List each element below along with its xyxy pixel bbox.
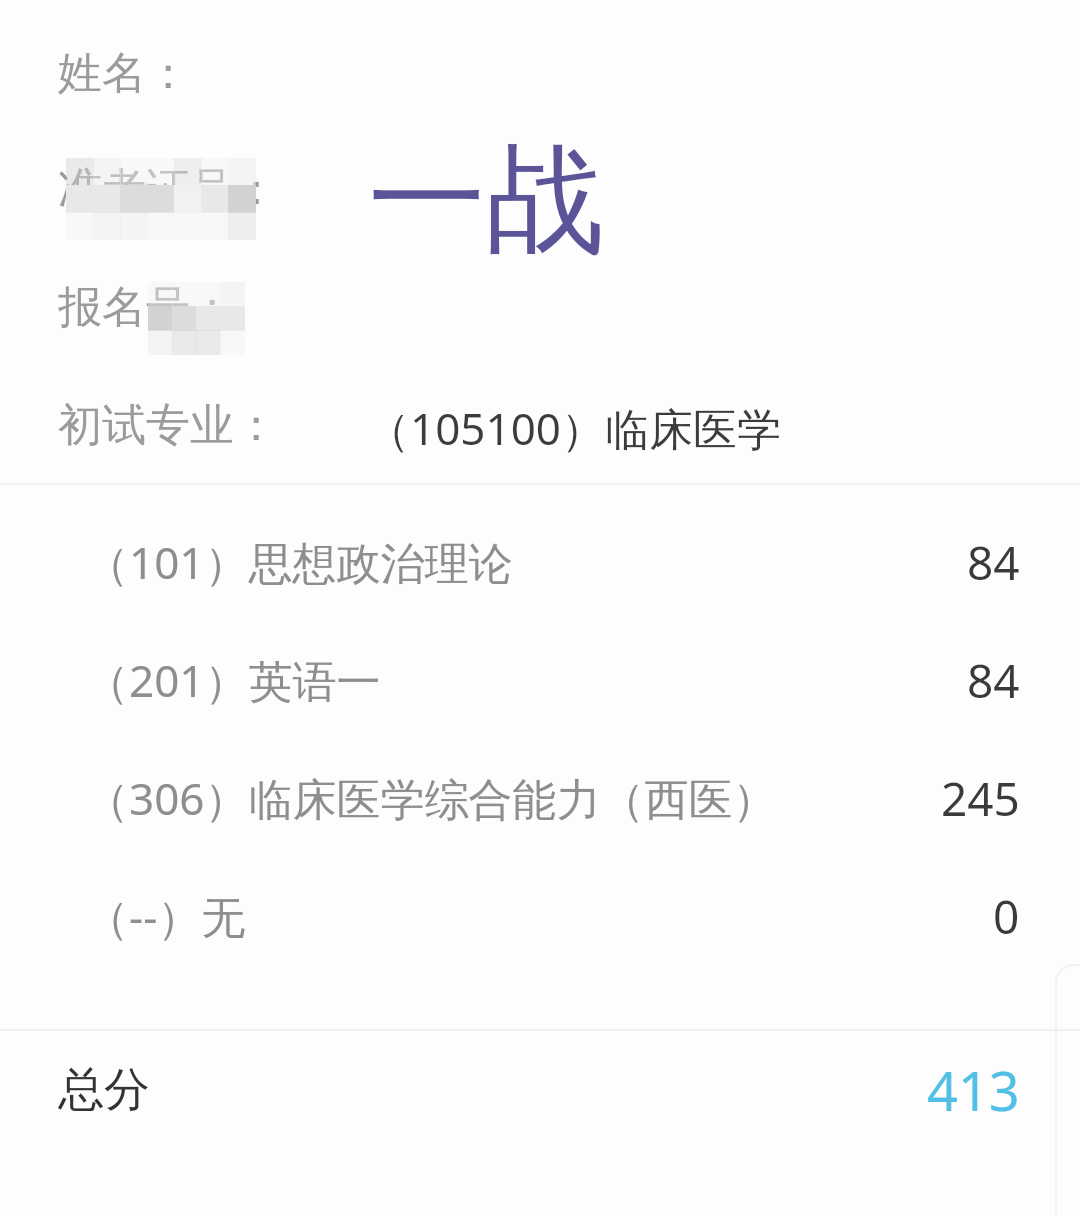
staticText: 报名号： xyxy=(58,280,234,335)
staticText: 初试专业： xyxy=(58,398,278,453)
staticText: 姓名： xyxy=(58,46,190,101)
staticText: 245 xyxy=(941,767,1020,830)
staticText: 413 xyxy=(927,1053,1020,1127)
button[interactable]: （306）临床医学综合能力（西医） xyxy=(0,739,1080,857)
staticText: （306）临床医学综合能力（西医） xyxy=(85,768,777,828)
staticText: 总分 xyxy=(58,1061,150,1119)
staticText: （105100）临床医学 xyxy=(366,398,782,458)
staticText: 0 xyxy=(993,885,1020,948)
button[interactable]: （--）无 xyxy=(0,857,1080,975)
staticText: 84 xyxy=(967,531,1020,594)
staticText: （201）英语一 xyxy=(85,650,381,710)
staticText: 准考证号： xyxy=(58,162,278,217)
button[interactable]: （101）思想政治理论 xyxy=(0,503,1080,621)
staticText: 84 xyxy=(967,649,1020,712)
staticText: （--）无 xyxy=(85,886,246,946)
staticText: （101）思想政治理论 xyxy=(85,532,513,592)
staticText: 一战 xyxy=(368,126,604,275)
button[interactable]: 总分 xyxy=(0,1031,1080,1149)
button[interactable]: （201）英语一 xyxy=(0,621,1080,739)
